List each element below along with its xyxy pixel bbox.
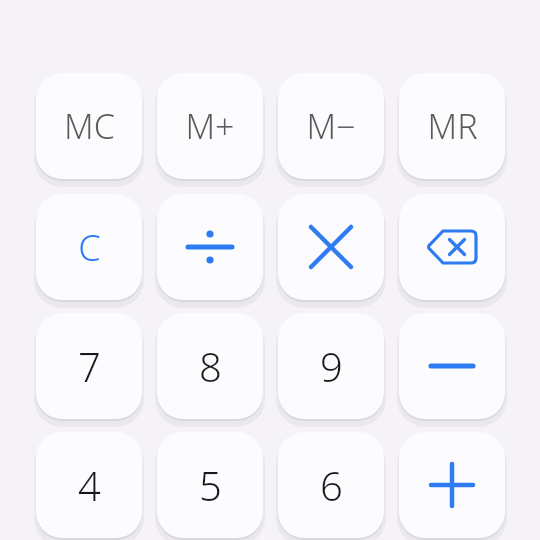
- button[interactable]: Subtract: [399, 313, 505, 419]
- button[interactable]: Multiply: [278, 194, 384, 300]
- button[interactable]: C: [36, 194, 142, 300]
- staticText: M−: [306, 103, 356, 149]
- staticText: 4: [78, 458, 101, 512]
- button[interactable]: 5: [157, 432, 263, 538]
- button[interactable]: 8: [157, 313, 263, 419]
- staticText: C: [78, 223, 101, 272]
- button[interactable]: Divide: [157, 194, 263, 300]
- staticText: 9: [320, 339, 343, 393]
- button[interactable]: 7: [36, 313, 142, 419]
- button[interactable]: 9: [278, 313, 384, 419]
- button[interactable]: M+: [157, 73, 263, 179]
- button[interactable]: MC: [36, 73, 142, 179]
- staticText: MC: [64, 103, 115, 149]
- staticText: 7: [78, 339, 101, 393]
- button[interactable]: Add: [399, 432, 505, 538]
- staticText: 8: [199, 339, 222, 393]
- button[interactable]: Backspace: [399, 194, 505, 300]
- staticText: M+: [185, 103, 235, 149]
- button[interactable]: M−: [278, 73, 384, 179]
- button[interactable]: 4: [36, 432, 142, 538]
- button[interactable]: 6: [278, 432, 384, 538]
- staticText: 6: [320, 458, 343, 512]
- staticText: 5: [199, 458, 222, 512]
- button[interactable]: MR: [399, 73, 505, 179]
- staticText: MR: [427, 103, 478, 149]
